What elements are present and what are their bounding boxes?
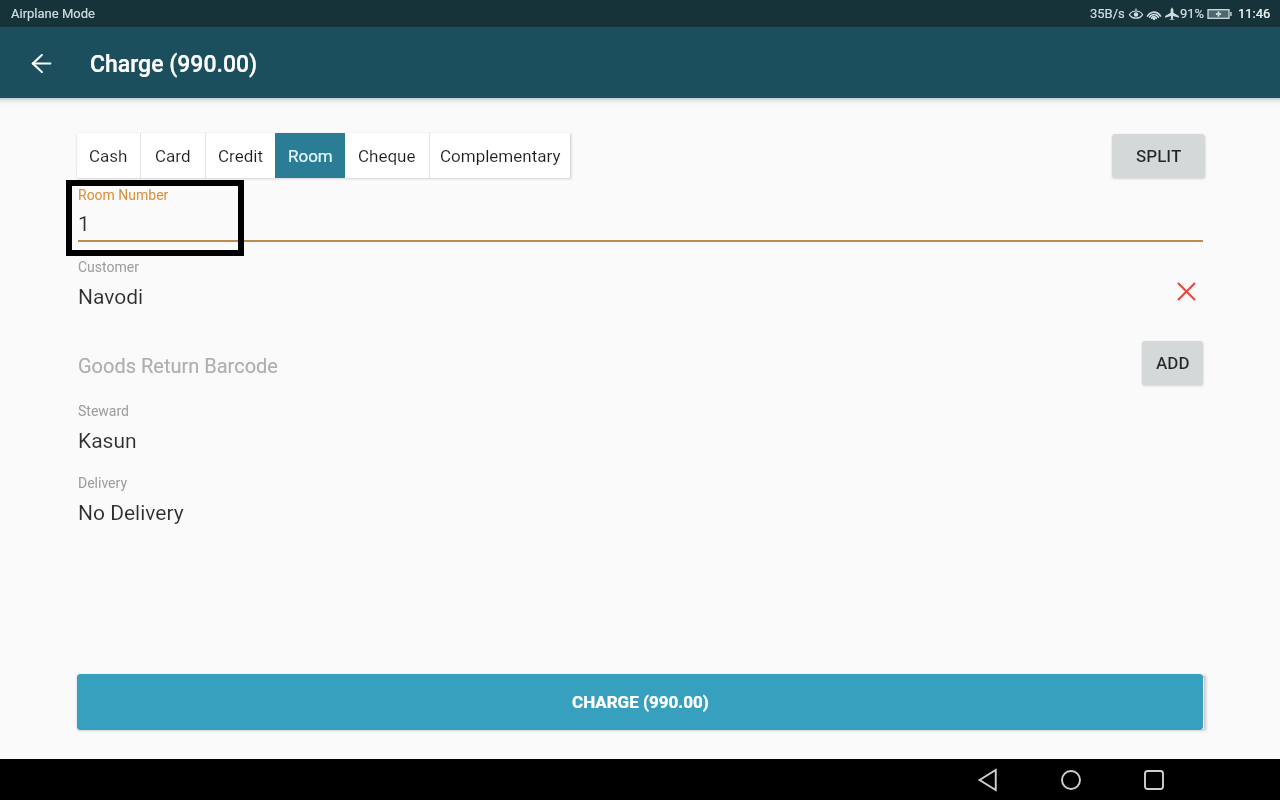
button[interactable]: Back [947, 759, 1029, 800]
staticText: CHARGE (990.00) [572, 692, 709, 712]
button[interactable]: CHARGE (990.00) [77, 674, 1203, 730]
button[interactable]: Credit [206, 133, 275, 178]
staticText: Navodi [78, 285, 144, 310]
button[interactable]: Clear customer [1172, 277, 1200, 305]
staticText: ADD [1156, 353, 1190, 373]
staticText: Room Number [78, 187, 169, 203]
staticText: Cheque [358, 146, 416, 166]
staticText: Steward [78, 403, 129, 419]
staticText: Delivery [78, 475, 128, 491]
staticText: 11:46 [1238, 6, 1271, 21]
button[interactable]: Cash [77, 133, 140, 178]
staticText: 91% [1180, 6, 1205, 21]
button[interactable]: ADD [1142, 341, 1203, 385]
staticText: Cash [89, 146, 128, 166]
staticText: SPLIT [1136, 146, 1182, 166]
button[interactable]: Room Number field [66, 180, 244, 256]
button[interactable]: Steward [78, 403, 1203, 455]
button[interactable]: Customer [78, 259, 1164, 311]
staticText: Credit [218, 146, 263, 166]
button[interactable]: Delivery [78, 475, 1203, 527]
staticText: No Delivery [78, 501, 184, 526]
button[interactable]: Home [1030, 759, 1112, 800]
staticText: Complementary [440, 146, 561, 166]
staticText: Customer [78, 259, 139, 275]
staticText: 1 [78, 212, 90, 237]
staticText: 35B/s [1090, 6, 1125, 21]
staticText: Card [155, 146, 191, 166]
button[interactable]: Cheque [345, 133, 429, 178]
staticText: Room [288, 146, 333, 166]
button[interactable]: Room [275, 133, 345, 178]
button[interactable]: Complementary [430, 133, 570, 178]
button[interactable]: SPLIT [1112, 134, 1205, 178]
button[interactable]: Goods Return Barcode [78, 350, 1133, 380]
button[interactable]: Navigate up [21, 43, 61, 83]
staticText: Kasun [78, 429, 137, 454]
staticText: Airplane Mode [11, 6, 95, 21]
button[interactable]: Card [141, 133, 205, 178]
staticText: Goods Return Barcode [78, 354, 278, 377]
button[interactable]: Recent apps [1113, 759, 1195, 800]
staticText: Charge (990.00) [90, 51, 258, 78]
